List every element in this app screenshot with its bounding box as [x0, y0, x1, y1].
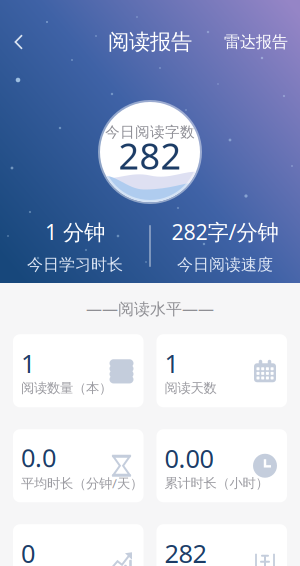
- staticText: 282: [118, 132, 181, 179]
- staticText: 雷达报告: [224, 32, 288, 52]
- staticText: 1: [164, 346, 178, 380]
- staticText: ——阅读水平——: [86, 298, 214, 319]
- staticText: 今日阅读速度: [177, 255, 273, 274]
- staticText: 阅读报告: [108, 29, 192, 55]
- staticText: 282: [164, 536, 206, 566]
- staticText: 0: [21, 536, 35, 566]
- button[interactable]: 1: [156, 334, 287, 407]
- button[interactable]: 雷达报告: [212, 24, 300, 60]
- staticText: 0.0: [21, 441, 56, 474]
- button[interactable]: 0: [13, 524, 143, 566]
- staticText: 阅读数量（本）: [21, 380, 112, 396]
- button[interactable]: 返回: [0, 24, 38, 60]
- staticText: 今日学习时长: [27, 255, 123, 274]
- staticText: 阅读天数: [164, 380, 216, 396]
- staticText: 0.00: [164, 441, 213, 475]
- staticText: 平均时长（分钟/天）: [21, 474, 143, 492]
- staticText: 累计时长（小时）: [164, 475, 268, 491]
- staticText: 1: [21, 346, 35, 380]
- button[interactable]: 282: [156, 524, 287, 566]
- staticText: 1 分钟: [45, 217, 105, 246]
- button[interactable]: 0.0: [13, 429, 143, 502]
- staticText: 282字/分钟: [171, 217, 278, 246]
- staticText: 今日阅读字数: [105, 123, 195, 141]
- button[interactable]: 0.00: [156, 429, 287, 502]
- button[interactable]: 1: [13, 334, 143, 407]
